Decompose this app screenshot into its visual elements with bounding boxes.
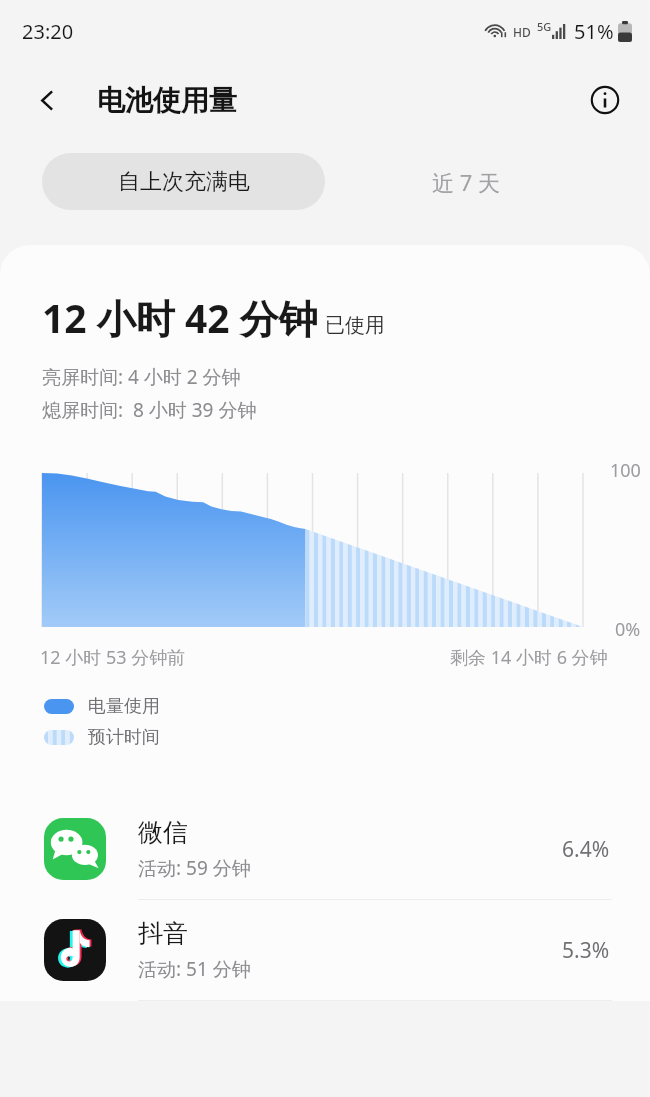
staticText: 熄屏时间: 8 小时 39 分钟 [42, 397, 257, 423]
staticText: 6.4% [562, 835, 610, 864]
staticText: 5.3% [562, 936, 610, 965]
staticText: 51% [574, 18, 614, 45]
staticText: 自上次充满电 [118, 168, 250, 196]
button[interactable]: 信息 [582, 77, 628, 123]
button[interactable]: 近 7 天 [325, 153, 608, 210]
staticText: 0% [615, 617, 641, 642]
button[interactable]: 抖音 [0, 900, 650, 1000]
staticText: 电池使用量 [97, 83, 237, 118]
staticText: 12 小时 42 分钟 [42, 291, 318, 344]
staticText: 23:20 [22, 18, 74, 45]
button[interactable]: 自上次充满电 [42, 153, 325, 210]
staticText: 活动: 51 分钟 [138, 956, 251, 982]
staticText: 近 7 天 [432, 167, 501, 197]
button[interactable]: 返回 [24, 77, 70, 123]
staticText: 预计时间 [88, 726, 160, 749]
staticText: 电量使用 [88, 695, 160, 718]
staticText: HD [513, 24, 531, 40]
staticText: 抖音 [138, 918, 188, 949]
staticText: 5G [537, 19, 552, 34]
staticText: 活动: 59 分钟 [138, 855, 251, 881]
staticText: 亮屏时间: 4 小时 2 分钟 [42, 364, 241, 390]
staticText: 100 [610, 458, 641, 483]
staticText: 剩余 14 小时 6 分钟 [450, 645, 608, 670]
staticText: 微信 [138, 817, 188, 848]
button[interactable]: 微信 [0, 799, 650, 899]
staticText: 12 小时 53 分钟前 [40, 645, 186, 670]
staticText: 已使用 [325, 313, 385, 338]
